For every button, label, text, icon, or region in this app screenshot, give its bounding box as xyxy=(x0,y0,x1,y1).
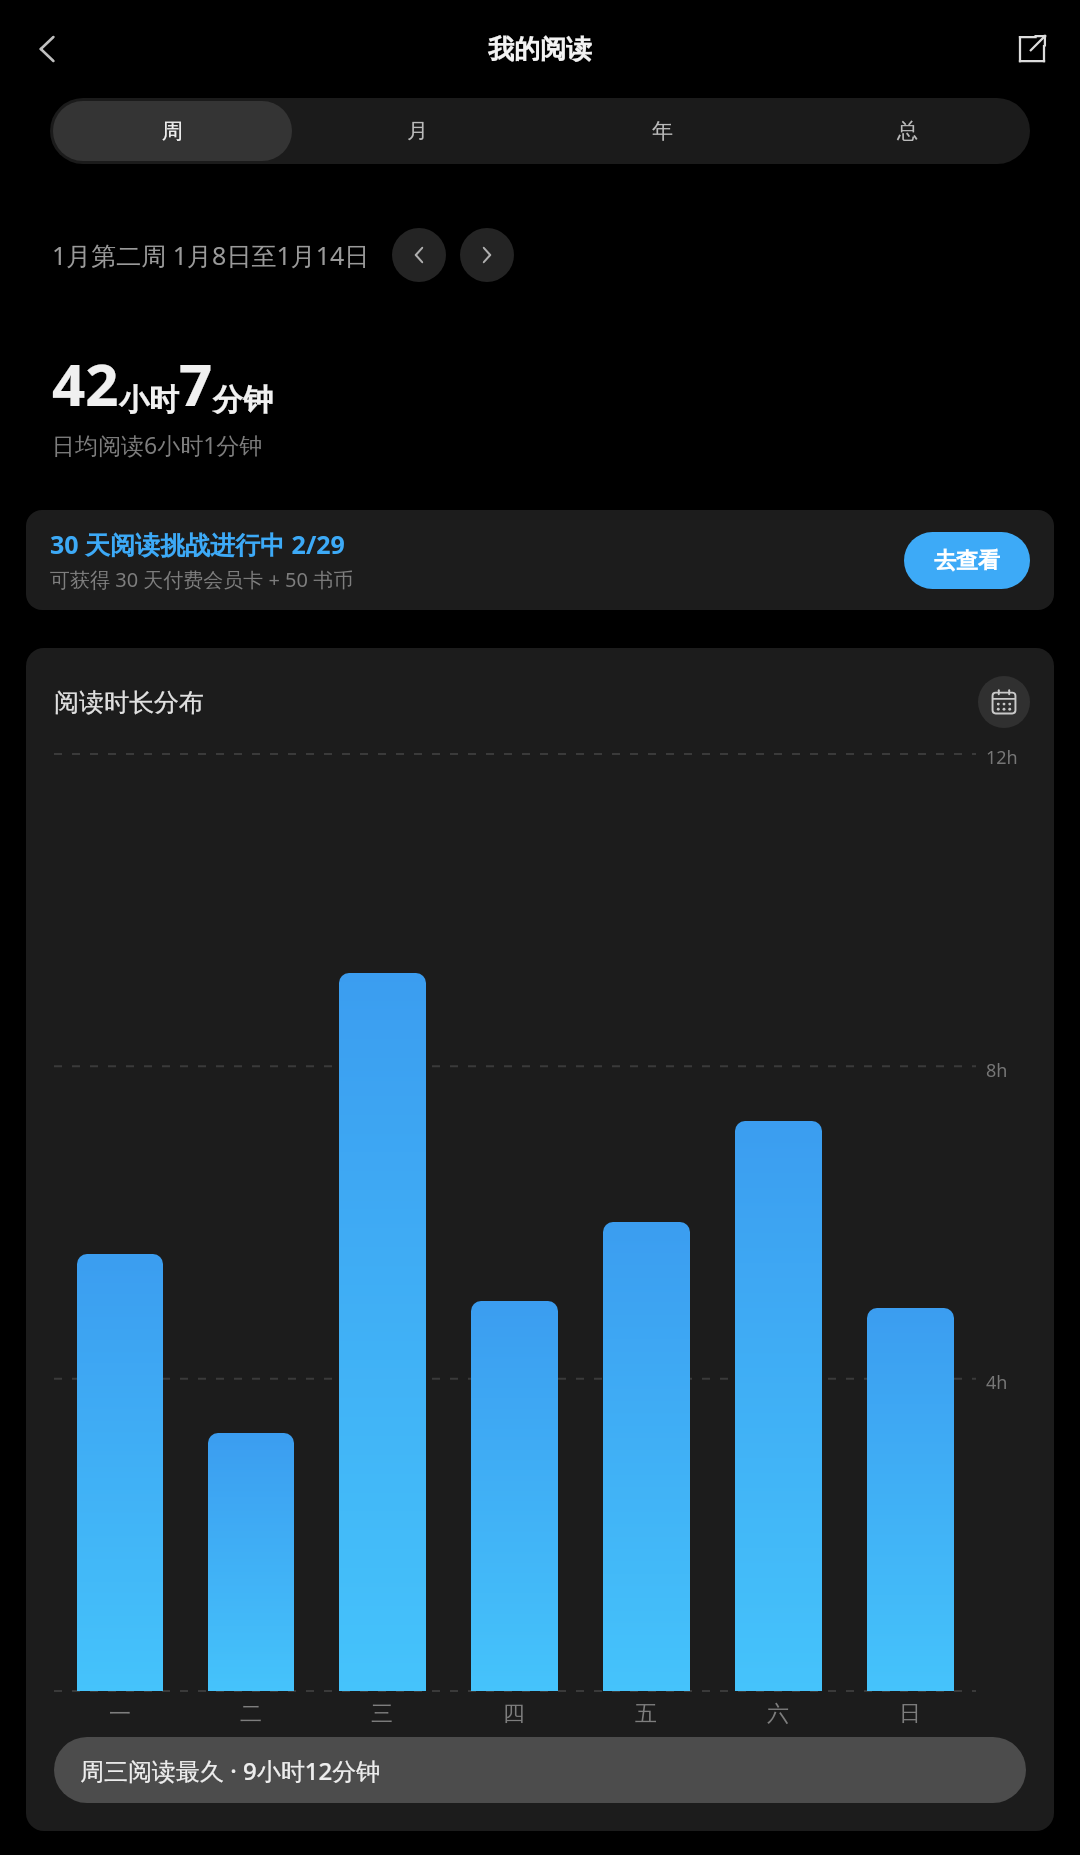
staticText: 8h xyxy=(986,1058,1008,1083)
staticText: 12h xyxy=(986,745,1018,770)
staticText: 年 xyxy=(652,118,673,144)
staticText: 五 xyxy=(635,1700,657,1728)
staticText: 月 xyxy=(407,118,428,144)
button[interactable]: 月 xyxy=(298,101,537,161)
staticText: 日均阅读6小时1分钟 xyxy=(52,429,263,460)
button[interactable]: 周三阅读最久 · 9小时12分钟 xyxy=(54,1737,1026,1803)
staticText: 4h xyxy=(986,1370,1008,1395)
button[interactable]: 30 天阅读挑战进行中 2/29 xyxy=(26,510,1054,610)
button[interactable]: Share xyxy=(1006,23,1058,75)
staticText: 周 xyxy=(162,118,183,144)
staticText: 我的阅读 xyxy=(488,33,592,66)
staticText: 三 xyxy=(371,1700,393,1728)
button[interactable]: Back xyxy=(20,21,76,77)
button[interactable]: Calendar xyxy=(978,676,1030,728)
staticText: 42 xyxy=(52,344,119,423)
button[interactable]: 周 xyxy=(53,101,292,161)
staticText: 1月第二周 1月8日至1月14日 xyxy=(52,238,370,272)
staticText: 总 xyxy=(897,118,918,144)
staticText: 阅读时长分布 xyxy=(54,687,978,718)
button[interactable]: Next week xyxy=(460,228,514,282)
staticText: 30 天阅读挑战进行中 2/29 xyxy=(50,527,345,561)
staticText: 二 xyxy=(240,1700,262,1728)
staticText: 周三阅读最久 · 9小时12分钟 xyxy=(80,1754,381,1787)
staticText: 分钟 xyxy=(213,381,273,419)
staticText: 一 xyxy=(109,1700,131,1728)
button[interactable]: 总 xyxy=(788,101,1027,161)
staticText: 7 xyxy=(179,344,213,423)
staticText: 六 xyxy=(767,1700,789,1728)
staticText: 去查看 xyxy=(934,547,1000,575)
staticText: 可获得 30 天付费会员卡 + 50 书币 xyxy=(50,566,354,593)
button[interactable]: Previous week xyxy=(392,228,446,282)
staticText: 日 xyxy=(899,1700,921,1728)
button[interactable]: 年 xyxy=(543,101,782,161)
staticText: 四 xyxy=(503,1700,525,1728)
staticText: 小时 xyxy=(119,381,179,419)
button[interactable]: 去查看 xyxy=(904,532,1030,589)
